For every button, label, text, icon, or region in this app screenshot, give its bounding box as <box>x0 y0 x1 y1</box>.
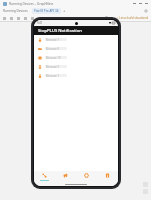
staticText: + <box>63 8 66 13</box>
button[interactable]: Message 9 <box>34 62 118 71</box>
button[interactable] <box>2 16 6 20</box>
staticText: Pixel 8 Pro API 34 <box>34 9 59 13</box>
button[interactable]: Message 8 <box>34 44 118 53</box>
button[interactable] <box>16 16 20 20</box>
staticText: ⚠ Linux build situational <box>116 16 149 20</box>
button[interactable] <box>58 16 62 20</box>
staticText: Message 10 <box>46 56 61 59</box>
button[interactable] <box>65 16 69 20</box>
button[interactable] <box>37 16 41 20</box>
button[interactable]: Pixel 8 Pro API 34 <box>34 9 59 13</box>
staticText: Running Devices <box>3 9 28 13</box>
button[interactable]: Message 7 <box>34 35 118 44</box>
staticText: Message 7 <box>46 38 59 41</box>
button[interactable] <box>72 16 76 20</box>
button[interactable] <box>44 16 48 20</box>
button[interactable] <box>30 16 34 20</box>
button[interactable]: Message 7 <box>34 71 118 80</box>
button[interactable]: Message 10 <box>34 53 118 62</box>
button[interactable]: Info <box>97 171 118 182</box>
button[interactable]: Calls <box>34 171 55 182</box>
staticText: StopPLUS Notification <box>38 28 82 34</box>
button[interactable] <box>51 16 55 20</box>
button[interactable] <box>9 16 13 20</box>
staticText: 9:41 <box>37 21 43 25</box>
staticText: Running Devices – GraphNine <box>9 2 54 6</box>
staticText: Message 9 <box>46 65 59 68</box>
button[interactable] <box>23 16 27 20</box>
button[interactable]: Settings <box>76 171 97 182</box>
staticText: Message 8 <box>46 47 59 50</box>
staticText: Message 7 <box>46 74 59 77</box>
button[interactable]: Alerts <box>55 171 76 182</box>
